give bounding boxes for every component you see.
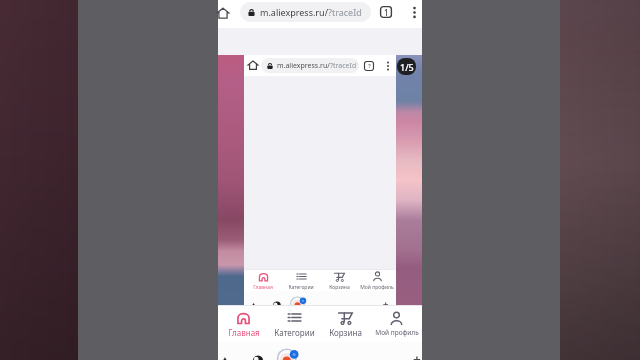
staticText: Категории (288, 284, 314, 291)
button[interactable]: Tabs (377, 3, 395, 21)
button[interactable]: m.aliexpress.ru/ (240, 2, 371, 22)
button[interactable]: Мой профиль (371, 306, 422, 342)
button[interactable]: 1/5 (397, 58, 416, 75)
button[interactable]: Категории (282, 270, 320, 291)
button[interactable]: Мой профиль (358, 270, 396, 291)
staticText: ? (368, 62, 371, 70)
button[interactable]: Категории (269, 306, 320, 342)
staticText: 1/5 (400, 61, 414, 73)
button[interactable]: m.aliexpress.ru/ (261, 58, 359, 73)
button[interactable]: Home (213, 3, 233, 23)
staticText: 1 (384, 7, 389, 18)
button[interactable]: More options (405, 3, 423, 21)
button[interactable]: More options (380, 58, 395, 73)
staticText: ?traceId (330, 61, 357, 71)
staticText: Корзина (329, 327, 362, 338)
staticText: ?traceId (328, 6, 362, 18)
button[interactable]: Корзина (320, 270, 358, 291)
staticText: Главная (253, 284, 273, 291)
staticText: Мой профиль (375, 328, 419, 337)
button[interactable]: Tabs (361, 58, 376, 73)
staticText: Мой профиль (360, 284, 394, 291)
staticText: m.aliexpress.ru/ (260, 6, 328, 18)
button[interactable]: Корзина (320, 306, 371, 342)
button[interactable]: Главная (244, 270, 282, 291)
staticText: Категории (274, 327, 315, 338)
button[interactable]: Главная (218, 306, 269, 342)
button[interactable]: Home (245, 57, 261, 73)
staticText: Главная (228, 327, 260, 338)
staticText: m.aliexpress.ru/ (277, 61, 330, 71)
staticText: Корзина (329, 284, 350, 291)
